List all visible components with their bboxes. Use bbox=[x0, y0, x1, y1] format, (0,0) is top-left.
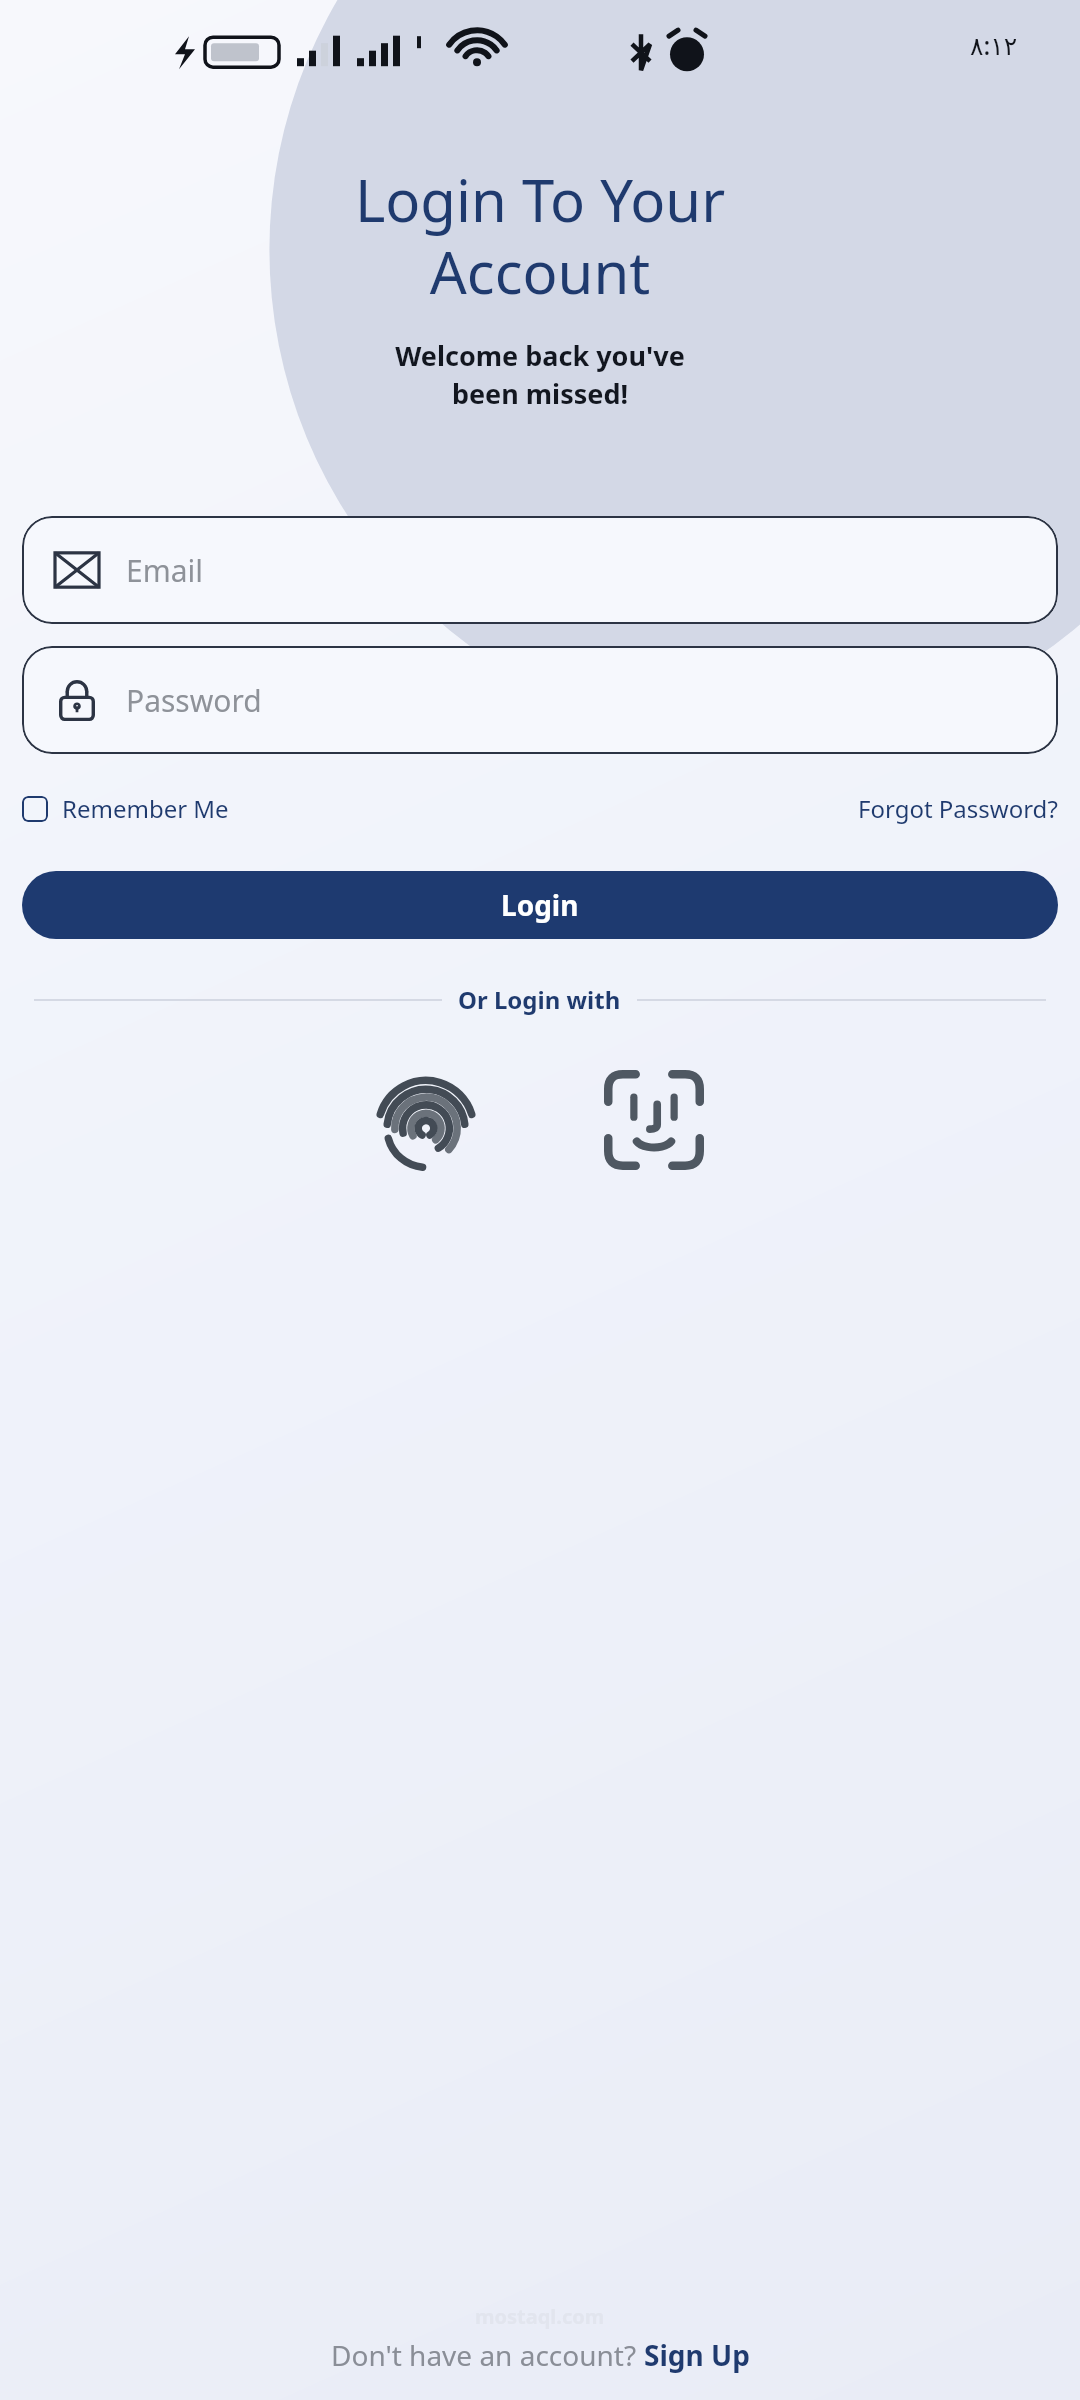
staticText: Login bbox=[501, 886, 579, 924]
button[interactable]: Login with Face ID bbox=[590, 1056, 718, 1184]
staticText: Sign Up bbox=[644, 2336, 750, 2374]
staticText: Login To Your Account bbox=[24, 160, 1056, 311]
staticText: Forgot Password? bbox=[858, 792, 1058, 825]
button[interactable]: Email bbox=[22, 516, 1058, 624]
staticText: Don't have an account? bbox=[331, 2336, 644, 2374]
staticText: Remember Me bbox=[62, 792, 229, 825]
button[interactable]: Password bbox=[22, 646, 1058, 754]
staticText: Welcome back you've been missed! bbox=[24, 337, 1056, 412]
button[interactable]: Login with fingerprint bbox=[362, 1056, 490, 1184]
button[interactable]: Login bbox=[22, 871, 1058, 939]
staticText: ٨:١٢ bbox=[970, 28, 1018, 62]
button[interactable]: Don't have an account? bbox=[0, 2336, 1080, 2400]
staticText: mostaql.com bbox=[475, 2303, 605, 2330]
button[interactable]: Forgot Password? bbox=[858, 786, 1058, 831]
staticText: Or Login with bbox=[458, 983, 621, 1016]
staticText: Password bbox=[126, 680, 262, 721]
button[interactable]: Remember Me bbox=[22, 786, 229, 831]
staticText: Email bbox=[126, 550, 204, 591]
